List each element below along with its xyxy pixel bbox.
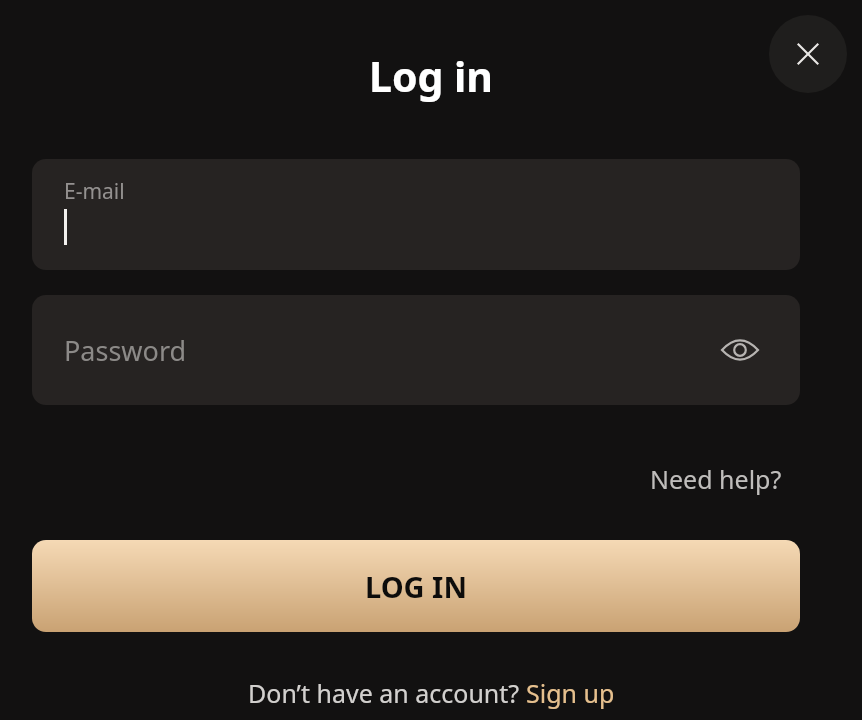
staticText: LOG IN [365, 567, 467, 606]
button[interactable]: Show password [713, 323, 767, 377]
button[interactable]: Sign up [526, 676, 615, 710]
staticText: Don’t have an account? [248, 676, 526, 710]
staticText: Log in [369, 48, 494, 104]
button[interactable]: E-mail [32, 159, 800, 270]
staticText: Password [64, 332, 187, 369]
button[interactable]: LOG IN [32, 540, 800, 632]
staticText: Need help? [650, 462, 782, 496]
staticText: Sign up [526, 676, 615, 710]
button[interactable]: Password [32, 295, 800, 405]
staticText: E-mail [64, 177, 125, 206]
button[interactable]: Close [769, 15, 847, 93]
button[interactable]: Need help? [642, 458, 790, 500]
